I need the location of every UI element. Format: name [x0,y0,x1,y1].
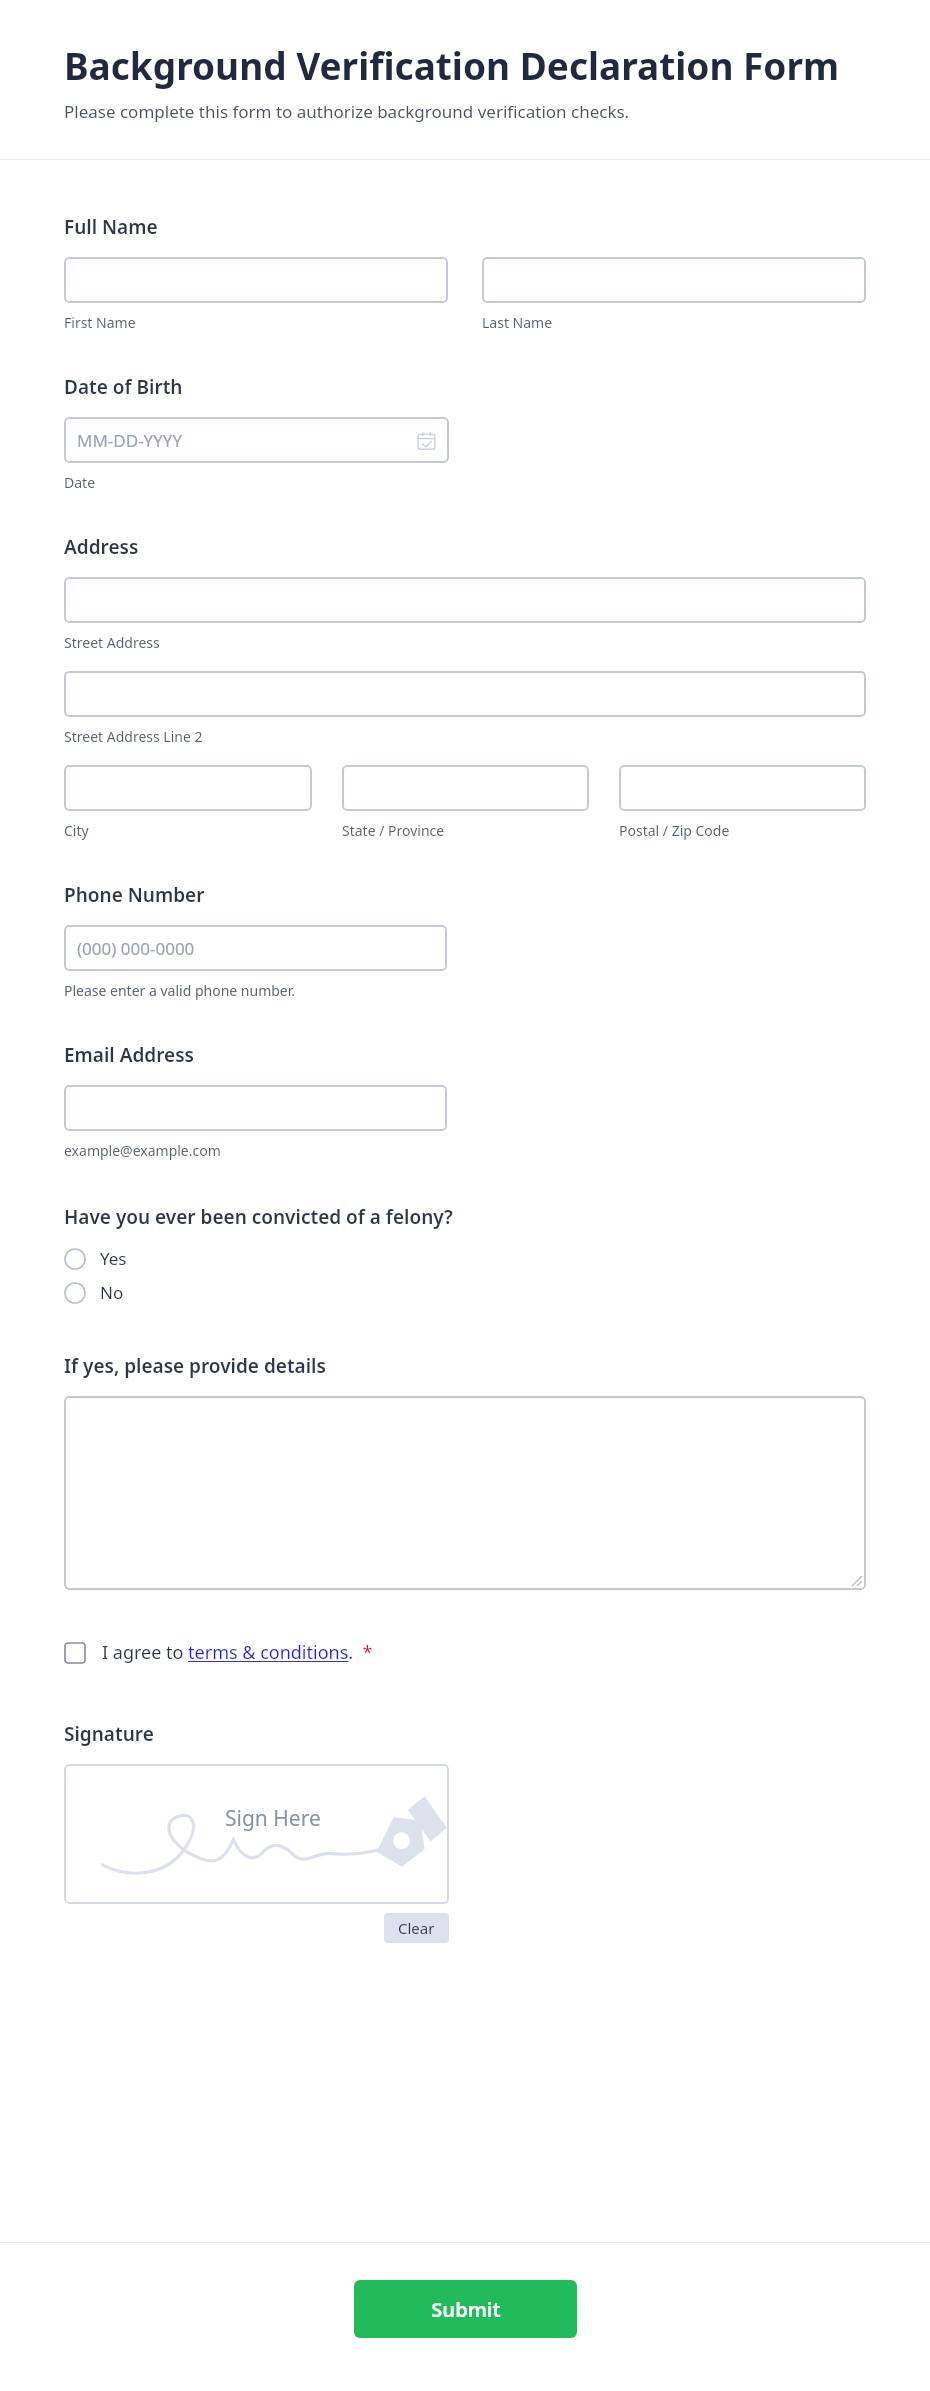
staticText: First Name [64,313,136,332]
staticText: Submit [431,2296,501,2323]
button[interactable] [64,1085,447,1131]
button[interactable]: (000) 000-0000 [64,925,447,971]
button[interactable]: Clear [384,1913,449,1943]
staticText: Signature [64,1721,154,1747]
button[interactable] [64,765,312,811]
button[interactable]: Signature pad [64,1764,449,1904]
staticText: If yes, please provide details [64,1353,326,1379]
button[interactable] [619,765,866,811]
button[interactable] [64,257,448,303]
button[interactable]: No [64,1278,124,1307]
staticText: Full Name [64,214,158,240]
staticText: MM-DD-YYYY [77,429,183,452]
staticText: Yes [100,1247,127,1270]
button[interactable]: MM-DD-YYYY [64,417,449,463]
button[interactable] [342,765,589,811]
button[interactable]: I agree to terms & conditions. * [64,1640,373,1665]
staticText: (000) 000-0000 [77,937,195,960]
staticText: State / Province [342,821,445,840]
staticText: Sign Here [225,1804,321,1833]
staticText: Street Address Line 2 [64,727,203,746]
staticText: I agree to terms & conditions. * [102,1640,373,1665]
staticText: No [100,1281,124,1304]
staticText: Have you ever been convicted of a felony… [64,1204,453,1230]
staticText: Please enter a valid phone number. [64,981,296,1000]
staticText: example@example.com [64,1141,221,1160]
button[interactable] [64,671,866,717]
staticText: Phone Number [64,882,205,908]
button[interactable]: Submit [354,2280,577,2338]
staticText: Email Address [64,1042,194,1068]
button[interactable] [64,577,866,623]
staticText: Postal / Zip Code [619,821,730,840]
button[interactable] [482,257,866,303]
staticText: Date of Birth [64,374,183,400]
staticText: Clear [398,1918,435,1938]
staticText: Address [64,534,139,560]
button[interactable]: Yes [64,1244,127,1273]
button[interactable] [64,1396,866,1590]
staticText: Date [64,473,96,492]
staticText: Background Verification Declaration Form [64,40,840,90]
staticText: Street Address [64,633,160,652]
staticText: Please complete this form to authorize b… [64,100,630,123]
staticText: Last Name [482,313,553,332]
staticText: City [64,821,89,840]
